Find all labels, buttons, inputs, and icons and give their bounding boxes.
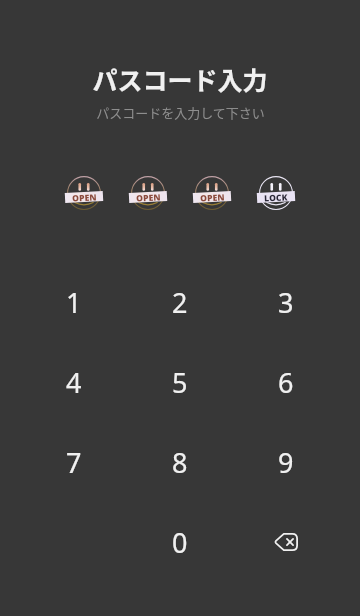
button[interactable]: 0 [127,522,233,562]
staticText: OPEN [72,191,97,203]
button[interactable]: 1 [21,282,127,322]
button[interactable]: 8 [127,442,233,482]
staticText: 2 [172,284,188,321]
staticText: 8 [172,444,188,481]
staticText: OPEN [200,191,225,203]
button[interactable]: 2 [127,282,233,322]
staticText: 6 [278,364,294,401]
button[interactable]: 7 [21,442,127,482]
button[interactable]: Filled passcode slot [192,173,232,213]
staticText: 3 [278,284,294,321]
staticText: 1 [66,284,82,321]
staticText: 9 [278,444,294,481]
button[interactable]: 4 [21,362,127,402]
staticText: 4 [66,364,82,401]
button[interactable]: 6 [233,362,339,402]
button[interactable]: Filled passcode slot [64,173,104,213]
staticText: 0 [172,524,188,561]
staticText: OPEN [136,191,161,203]
button[interactable]: Delete [233,522,339,562]
button[interactable]: Empty passcode slot [256,173,296,213]
button[interactable]: Filled passcode slot [128,173,168,213]
staticText: パスコード入力 [92,61,268,97]
button[interactable]: 9 [233,442,339,482]
staticText: LOCK [264,191,288,203]
button[interactable]: 3 [233,282,339,322]
button[interactable]: 5 [127,362,233,402]
staticText: パスコードを入力して下さい [96,103,265,122]
staticText: 7 [66,444,82,481]
other: Delete [274,533,298,551]
staticText: 5 [172,364,188,401]
